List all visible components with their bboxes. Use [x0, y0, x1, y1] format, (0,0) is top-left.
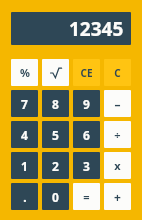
- staticText: 5: [52, 127, 59, 143]
- staticText: 2: [52, 158, 59, 174]
- button[interactable]: 0: [42, 183, 69, 210]
- button[interactable]: Square root: [42, 59, 69, 86]
- staticText: ÷: [114, 127, 121, 142]
- button[interactable]: .: [11, 183, 38, 210]
- staticText: .: [23, 189, 27, 205]
- button[interactable]: –: [104, 90, 131, 117]
- staticText: –: [114, 96, 121, 112]
- button[interactable]: 5: [42, 121, 69, 148]
- button[interactable]: =: [73, 183, 100, 210]
- button[interactable]: 1: [11, 152, 38, 179]
- button[interactable]: x: [104, 152, 131, 179]
- staticText: 7: [21, 96, 28, 112]
- staticText: x: [114, 158, 121, 173]
- staticText: 4: [21, 127, 28, 143]
- button[interactable]: 3: [73, 152, 100, 179]
- staticText: 9: [83, 96, 90, 112]
- button[interactable]: 12345: [11, 12, 131, 45]
- staticText: %: [20, 65, 30, 80]
- button[interactable]: 7: [11, 90, 38, 117]
- staticText: =: [83, 189, 90, 204]
- staticText: 6: [83, 127, 90, 143]
- staticText: 1: [21, 158, 28, 174]
- staticText: 0: [52, 189, 59, 205]
- button[interactable]: ÷: [104, 121, 131, 148]
- staticText: 12345: [69, 16, 124, 42]
- staticText: +: [114, 189, 121, 205]
- staticText: 8: [52, 96, 59, 112]
- button[interactable]: %: [11, 59, 38, 86]
- button[interactable]: 8: [42, 90, 69, 117]
- button[interactable]: 2: [42, 152, 69, 179]
- staticText: CE: [80, 66, 93, 80]
- button[interactable]: 4: [11, 121, 38, 148]
- button[interactable]: +: [104, 183, 131, 210]
- button[interactable]: CE: [73, 59, 100, 86]
- button[interactable]: 9: [73, 90, 100, 117]
- button[interactable]: C: [104, 59, 131, 86]
- button[interactable]: 6: [73, 121, 100, 148]
- staticText: C: [114, 66, 121, 80]
- staticText: 3: [83, 158, 90, 174]
